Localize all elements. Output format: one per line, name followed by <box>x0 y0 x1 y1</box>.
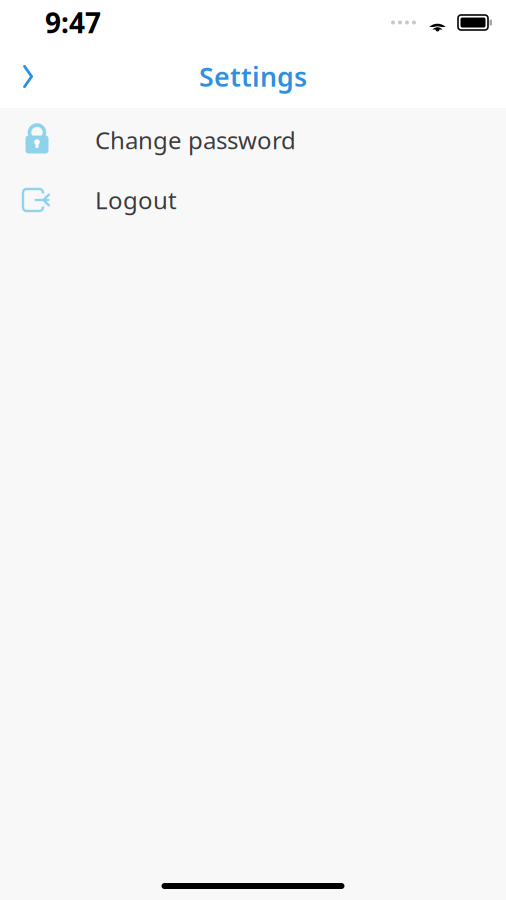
button[interactable]: Back <box>4 52 52 100</box>
button[interactable]: Change password <box>0 110 506 170</box>
staticText: 9:47 <box>45 4 101 41</box>
staticText: Change password <box>95 124 296 156</box>
staticText: Logout <box>95 184 177 216</box>
button[interactable]: Logout <box>0 170 506 230</box>
staticText: Settings <box>199 59 307 94</box>
